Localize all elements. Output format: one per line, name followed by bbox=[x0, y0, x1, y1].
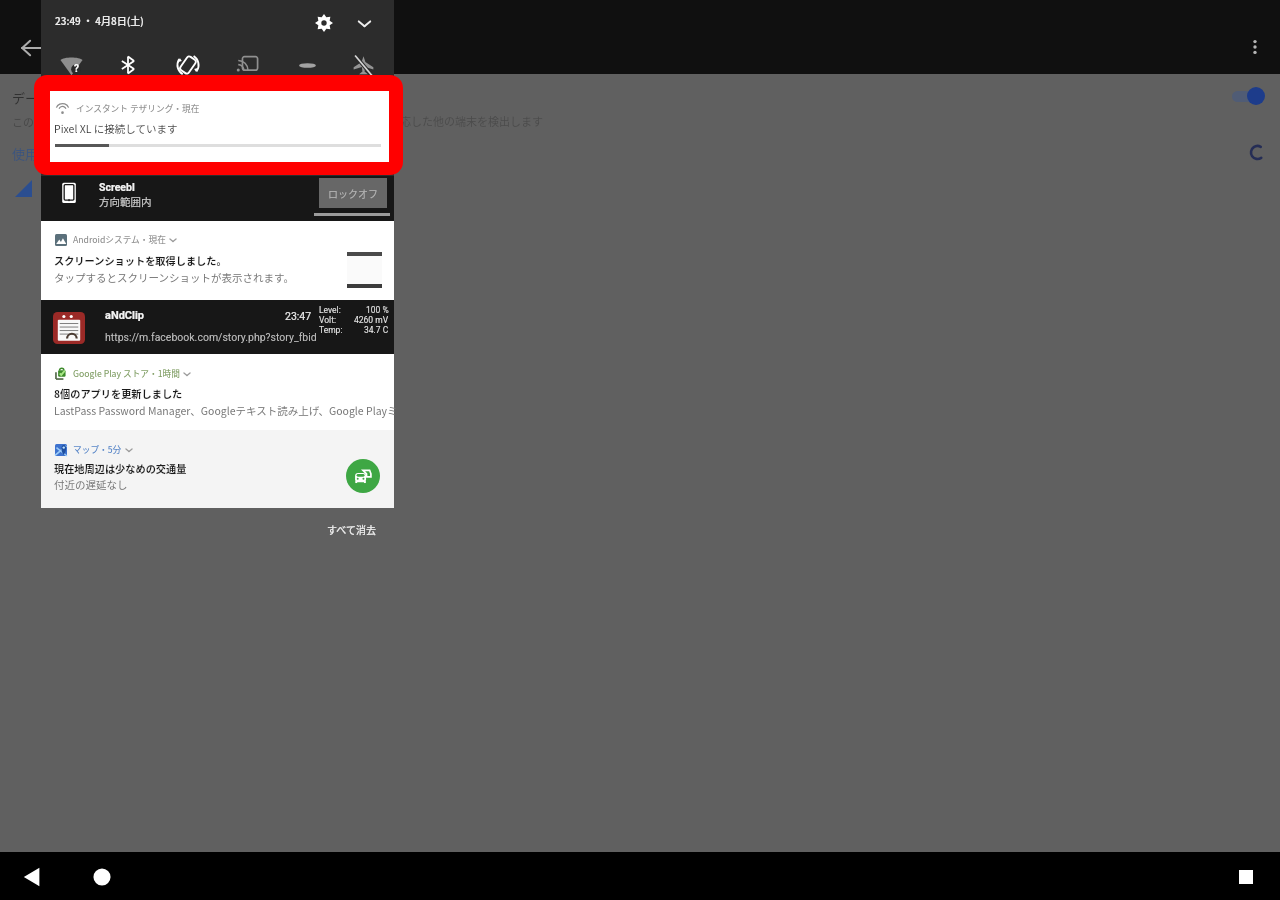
staticText: 方向範囲内 bbox=[99, 194, 152, 209]
staticText: インスタント テザリング・現在 bbox=[76, 102, 200, 115]
button[interactable]: Recent apps bbox=[1227, 858, 1265, 896]
staticText: ? bbox=[74, 63, 79, 75]
button[interactable]: Driving mode bbox=[346, 459, 380, 493]
button[interactable]: Screebl bbox=[41, 176, 394, 221]
button[interactable]: Bluetooth bbox=[111, 48, 145, 82]
staticText: この端 bbox=[12, 114, 45, 130]
staticText: 現在地周辺は少なめの交通量 bbox=[54, 461, 187, 476]
button[interactable]: インスタント テザリング・現在 bbox=[50, 91, 389, 162]
button[interactable]: More options bbox=[1239, 31, 1271, 63]
button[interactable]: Settings bbox=[311, 10, 337, 36]
button[interactable]: Auto-rotate bbox=[171, 48, 205, 82]
button[interactable]: Home bbox=[83, 858, 121, 896]
staticText: aNdClip bbox=[105, 309, 145, 322]
staticText: Level: bbox=[319, 305, 341, 315]
staticText: 8個のアプリを更新しました bbox=[54, 386, 183, 401]
staticText: 100 % bbox=[366, 305, 389, 315]
button[interactable]: マップ・5分 bbox=[41, 430, 394, 508]
staticText: Screebl bbox=[99, 181, 135, 193]
staticText: Google Play ストア・1時間 bbox=[73, 367, 180, 380]
button[interactable]: aNdClip bbox=[41, 300, 394, 354]
button[interactable]: Back bbox=[14, 858, 52, 896]
staticText: https://m.facebook.com/story.php?story_f… bbox=[105, 331, 317, 343]
button[interactable]: すべて消去 bbox=[320, 516, 383, 542]
button[interactable]: Wi-Fi bbox=[54, 48, 88, 82]
staticText: Androidシステム・現在 bbox=[73, 233, 166, 246]
staticText: 23:49 ・ 4月8日(土) bbox=[55, 13, 144, 27]
button[interactable]: ロックオフ bbox=[319, 178, 387, 208]
staticText: 23:47 bbox=[285, 310, 312, 322]
button[interactable]: Cast bbox=[230, 48, 264, 82]
staticText: ロックオフ bbox=[328, 186, 378, 200]
staticText: Pixel XL に接続しています bbox=[54, 121, 178, 136]
staticText: 付近の遅延なし bbox=[54, 477, 128, 492]
staticText: Volt: bbox=[319, 315, 336, 325]
staticText: 4260 mV bbox=[354, 315, 389, 325]
button[interactable]: Collapse quick settings bbox=[351, 10, 377, 36]
staticText: 応した他の端末を検出します bbox=[400, 113, 543, 129]
button[interactable]: Toggle bbox=[1231, 86, 1267, 107]
button[interactable]: Flashlight bbox=[290, 48, 324, 82]
staticText: 使用可 bbox=[12, 144, 52, 163]
button[interactable]: Androidシステム・現在 bbox=[41, 221, 394, 300]
staticText: マップ・5分 bbox=[73, 443, 122, 456]
staticText: LastPass Password Manager、Googleテキスト読み上げ… bbox=[54, 403, 398, 418]
button[interactable]: Google Play ストア・1時間 bbox=[41, 354, 394, 430]
button[interactable]: Airplane mode bbox=[346, 48, 380, 82]
staticText: スクリーンショットを取得しました。 bbox=[54, 253, 227, 268]
staticText: すべて消去 bbox=[327, 522, 376, 536]
staticText: Temp: bbox=[319, 325, 343, 335]
button[interactable]: Back bbox=[14, 31, 48, 65]
staticText: 34.7 C bbox=[364, 325, 389, 335]
staticText: データ bbox=[12, 88, 52, 107]
staticText: タップするとスクリーンショットが表示されます。 bbox=[54, 270, 294, 285]
